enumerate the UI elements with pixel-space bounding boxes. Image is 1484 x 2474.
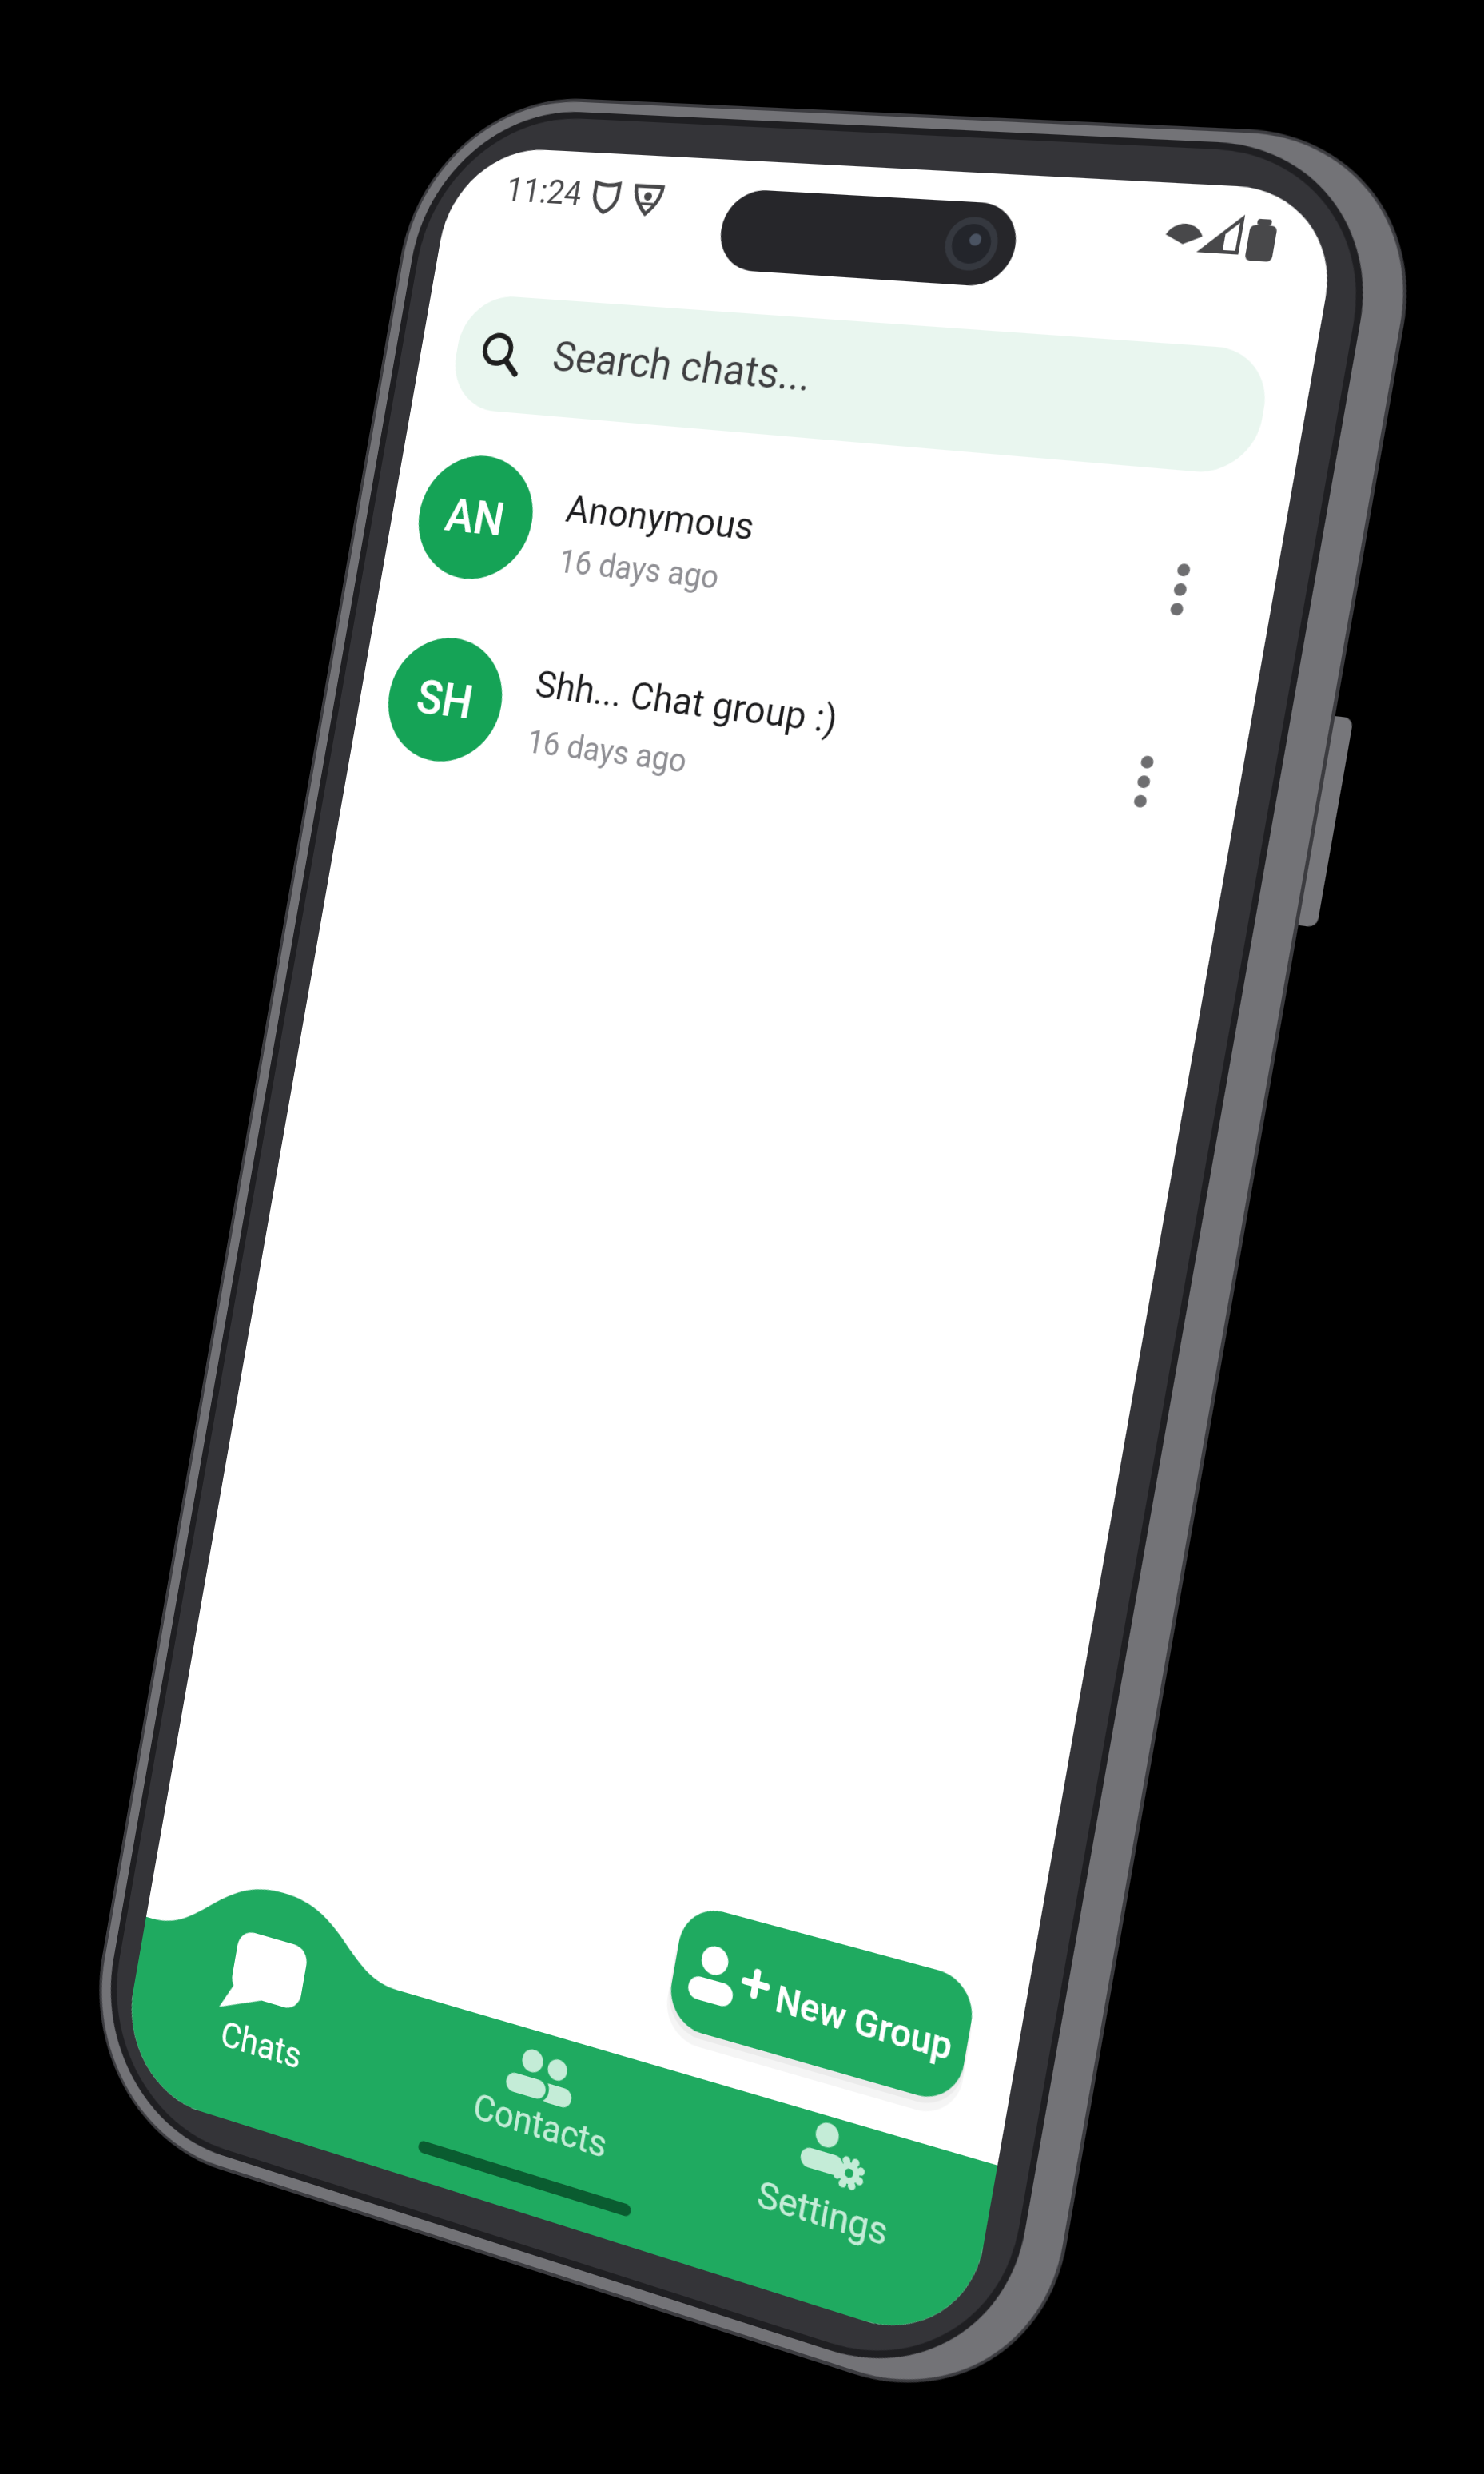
button[interactable] — [666, 1899, 986, 2103]
button[interactable] — [452, 304, 1269, 470]
button[interactable] — [152, 1910, 336, 2078]
button[interactable] — [416, 376, 1199, 607]
button[interactable] — [751, 2110, 943, 2245]
button[interactable] — [392, 615, 1175, 823]
button[interactable] — [448, 2030, 655, 2158]
